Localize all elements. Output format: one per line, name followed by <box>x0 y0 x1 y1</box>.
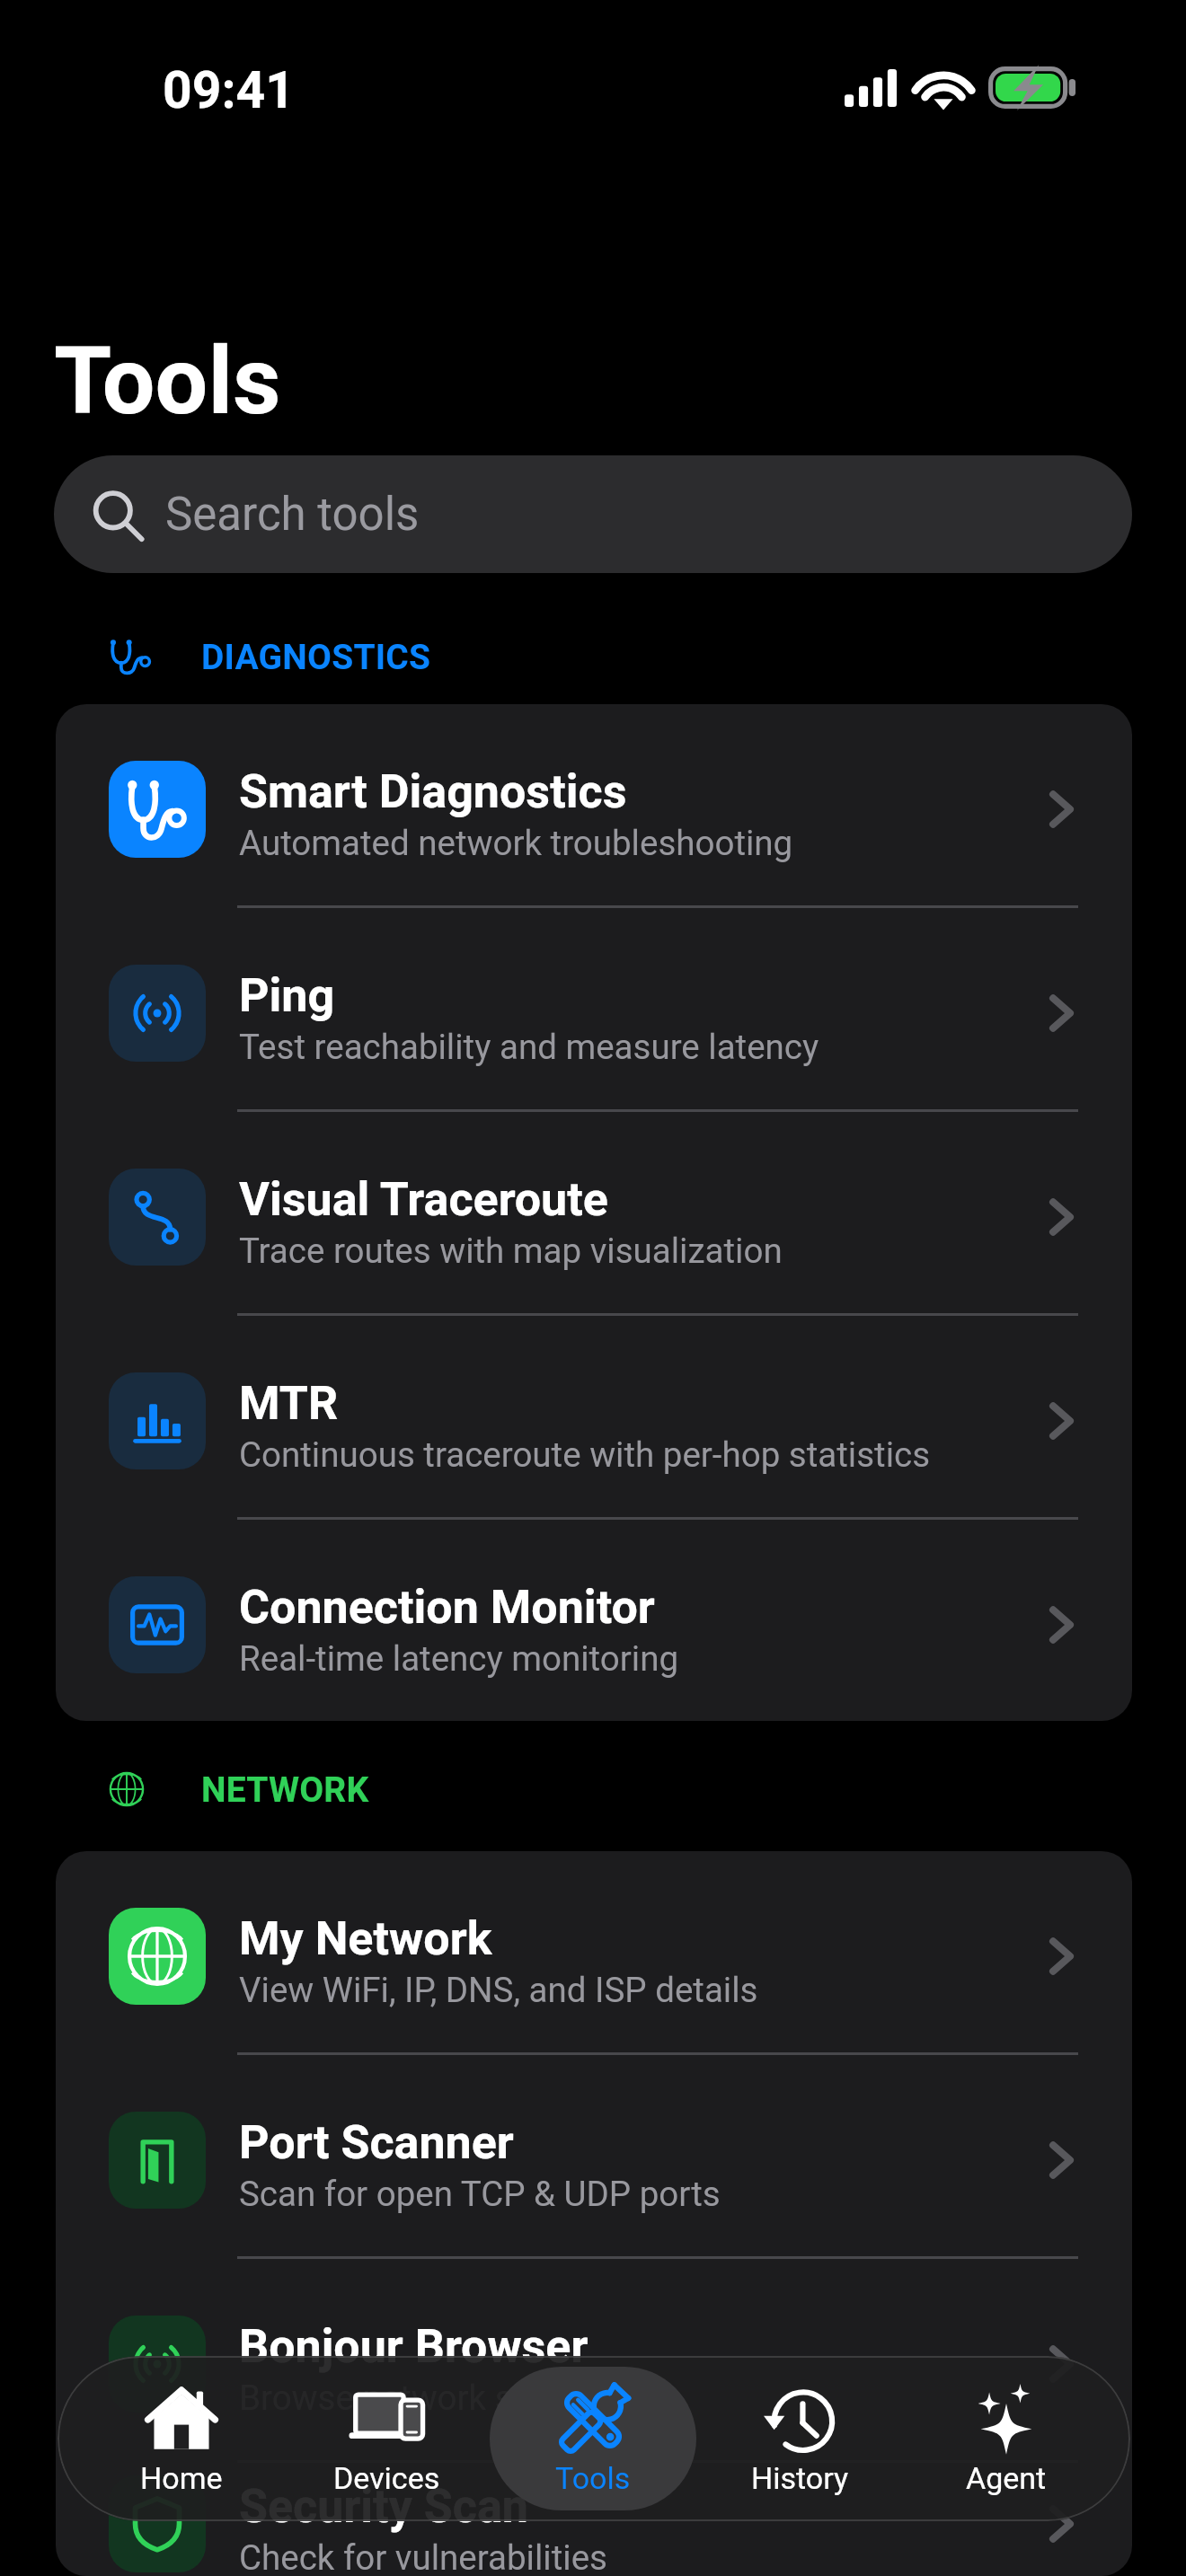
staticText: Search tools <box>165 488 420 542</box>
button[interactable]: Home <box>78 2367 284 2510</box>
staticText: Devices <box>333 2460 440 2496</box>
button[interactable]: Bonjour Browser <box>56 2259 1132 2460</box>
button[interactable]: Port Scanner <box>56 2055 1132 2256</box>
staticText: Visual Traceroute <box>239 1172 608 1227</box>
button[interactable]: Security Scan <box>56 2463 1132 2576</box>
staticText: Trace routes with map visualization <box>239 1231 783 1271</box>
button[interactable]: Devices <box>284 2367 490 2510</box>
staticText: Home <box>140 2460 223 2496</box>
button[interactable]: MTR <box>56 1316 1132 1517</box>
staticText: Bonjour Browser <box>239 2319 589 2374</box>
staticText: Real-time latency monitoring <box>239 1638 679 1679</box>
button[interactable]: Agent <box>903 2367 1110 2510</box>
staticText: 09:41 <box>163 60 295 120</box>
staticText: NETWORK <box>201 1769 369 1809</box>
staticText: Ping <box>239 968 335 1023</box>
staticText: Tools <box>54 327 281 437</box>
staticText: Tools <box>555 2460 631 2496</box>
staticText: Security Scan <box>239 2479 528 2534</box>
button[interactable]: Smart Diagnostics <box>56 704 1132 905</box>
staticText: Test reachability and measure latency <box>239 1027 819 1067</box>
staticText: History <box>751 2460 849 2496</box>
button[interactable]: Tools <box>490 2367 696 2510</box>
staticText: Port Scanner <box>239 2115 514 2170</box>
button[interactable]: Ping <box>56 908 1132 1109</box>
button[interactable]: Connection Monitor <box>56 1520 1132 1721</box>
staticText: DIAGNOSTICS <box>201 637 431 676</box>
button[interactable]: Visual Traceroute <box>56 1112 1132 1313</box>
staticText: Connection Monitor <box>239 1580 655 1635</box>
staticText: My Network <box>239 1911 492 1966</box>
staticText: View WiFi, IP, DNS, and ISP details <box>239 1970 758 2010</box>
button[interactable]: History <box>696 2367 903 2510</box>
staticText: Agent <box>966 2460 1047 2496</box>
staticText: Browse network services <box>239 2378 623 2418</box>
other: Search <box>92 489 144 541</box>
staticText: Continuous traceroute with per-hop stati… <box>239 1434 931 1475</box>
staticText: Scan for open TCP & UDP ports <box>239 2174 721 2214</box>
button[interactable]: Search <box>54 455 1132 573</box>
staticText: Automated network troubleshooting <box>239 823 793 863</box>
button[interactable]: My Network <box>56 1851 1132 2052</box>
staticText: MTR <box>239 1376 339 1431</box>
staticText: Check for vulnerabilities <box>239 2537 607 2576</box>
staticText: Smart Diagnostics <box>239 764 627 819</box>
